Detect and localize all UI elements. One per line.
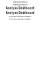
staticText: Analysis Dashboard — [12, 1, 27, 3]
staticText: Performance insights and metrics — [8, 16, 31, 17]
staticText: Analysis Dashboard — [12, 4, 27, 6]
staticText: Performance insights and metrics — [8, 18, 31, 20]
staticText: Analysis Dashboard — [5, 11, 34, 15]
staticText: Analysis Dashboard — [5, 6, 34, 10]
